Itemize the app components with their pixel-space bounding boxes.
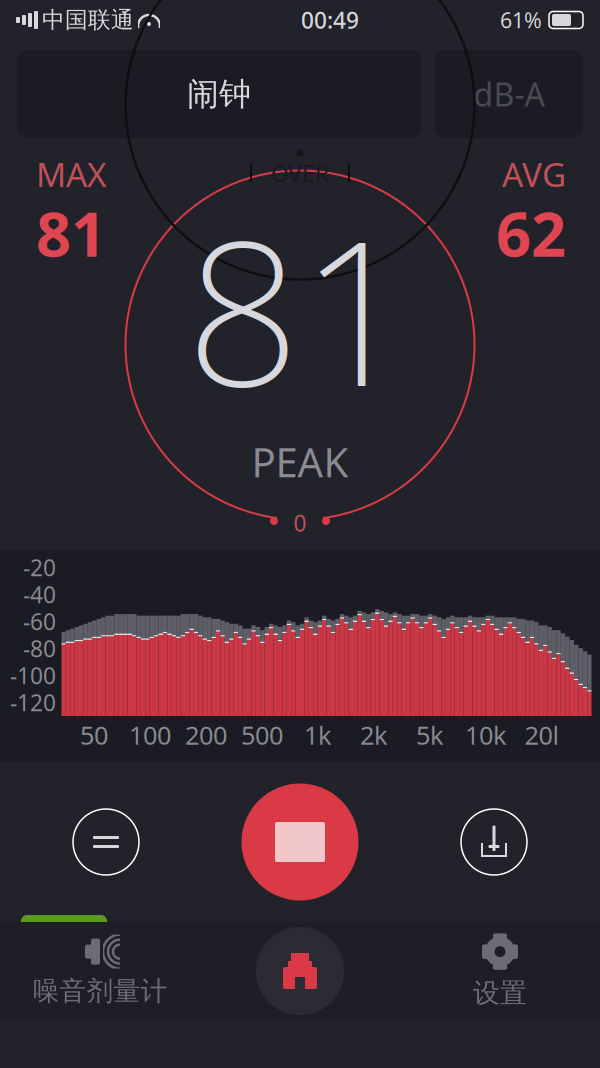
staticText: 500 [241, 718, 283, 752]
staticText: -20 [23, 552, 56, 582]
staticText: 81 [36, 192, 106, 274]
staticText: 50 [80, 718, 108, 752]
staticText: MAX [36, 152, 107, 196]
staticText: 1k [304, 718, 332, 752]
staticText: AVG [502, 152, 566, 196]
staticText: 5k [416, 718, 444, 752]
staticText: 81 [186, 176, 414, 441]
button[interactable]: Home [200, 922, 400, 1020]
staticText: 闹钟 [187, 74, 251, 114]
button[interactable]: 设置 [400, 922, 600, 1020]
button[interactable]: Save recording [451, 799, 537, 885]
staticText: 中国联通 [42, 6, 134, 34]
button[interactable]: dB-A [435, 50, 583, 138]
button[interactable]: 闹钟 [17, 50, 421, 138]
staticText: -60 [23, 606, 56, 636]
staticText: 00:15 [476, 677, 578, 730]
staticText: 噪音剂量计 [32, 975, 167, 1007]
button[interactable]: 噪音剂量计 [0, 922, 200, 1020]
staticText: 2k [360, 718, 388, 752]
staticText: 0 [293, 508, 306, 538]
staticText: 61% [500, 6, 542, 34]
button[interactable]: Stop recording [240, 782, 360, 902]
staticText: 00:49 [301, 5, 359, 35]
button[interactable]: PRO [21, 915, 107, 958]
staticText: 设置 [473, 977, 527, 1009]
staticText: 200 [185, 718, 227, 752]
staticText: 62 [496, 192, 566, 274]
staticText: 100 [129, 718, 171, 752]
staticText: -120 [10, 687, 56, 717]
staticText: -80 [23, 633, 56, 663]
staticText: OVER [271, 158, 329, 188]
staticText: -40 [23, 579, 56, 609]
button[interactable]: Menu [63, 799, 149, 885]
staticText: dB-A [473, 73, 544, 115]
staticText: -100 [10, 660, 56, 690]
staticText: PRO [34, 917, 94, 956]
staticText: PEAK [251, 435, 348, 488]
staticText: 20l [524, 718, 559, 752]
staticText: 10k [465, 718, 507, 752]
